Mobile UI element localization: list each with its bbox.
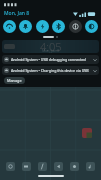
button[interactable]: App 4 [54,162,63,171]
button[interactable]: Page 1 [43,36,54,38]
button[interactable]: Home [38,175,64,177]
button[interactable]: Android System • USB debugging connected [2,55,99,64]
button[interactable]: BLUETOOTH [52,20,65,33]
button[interactable]: WIFI [3,20,16,33]
staticText: Android System • Charging this device vi… [11,68,91,73]
button[interactable]: 4:05 [2,40,99,53]
button[interactable]: App [82,128,92,138]
button[interactable]: App 5 [70,162,79,171]
button[interactable]: BELL [19,20,32,33]
button[interactable]: Android System • Charging this device vi… [2,66,99,75]
button[interactable]: BRIGHTNESS [85,20,98,33]
button[interactable]: ROTATE [69,20,82,33]
staticText: Manage [7,78,22,83]
button[interactable]: Media [4,44,15,49]
staticText: Mon, Jan 8 [42,48,60,53]
button[interactable]: Expand [92,57,97,62]
button[interactable]: Expand [92,68,97,73]
staticText: Mon, Jan 8 [4,10,30,17]
staticText: Android System • USB debugging connected [11,57,91,62]
button[interactable]: FLASH [36,20,49,33]
button[interactable]: App 1 [6,162,15,171]
button[interactable]: Manage [4,77,25,84]
staticText: 4:05 [40,40,62,52]
button[interactable]: App 3 [38,162,47,171]
button[interactable]: App 2 [22,162,31,171]
button[interactable]: App 6 [86,162,95,171]
